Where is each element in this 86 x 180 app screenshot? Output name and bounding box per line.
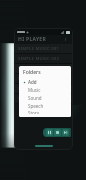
staticText: SIMPLE MUSIC 001 [18, 46, 60, 52]
staticText: SIMPLE MUSIC 003 [18, 66, 60, 72]
button[interactable]: Music [23, 86, 67, 94]
staticText: Story [28, 110, 39, 114]
staticText: Speech [28, 103, 44, 109]
button[interactable]: SIMPLE MUSIC 004 [15, 74, 72, 83]
button[interactable]: SIMPLE MUSIC 003 [15, 64, 72, 73]
staticText: Sound [28, 95, 42, 101]
button[interactable]: Speech [23, 102, 67, 110]
button[interactable]: SIMPLE MUSIC 001 [15, 44, 72, 53]
staticText: Add [28, 79, 37, 85]
staticText: SIMPLE MUSIC 004 [18, 76, 60, 82]
staticText: SIMPLE MUSIC 006 [18, 96, 60, 102]
button[interactable]: More options [62, 36, 69, 43]
staticText: SIMPLE MUSIC 002 [18, 56, 60, 62]
button[interactable]: Story [23, 110, 67, 114]
button[interactable]: Stop [54, 129, 61, 136]
button[interactable]: Next [62, 129, 69, 136]
button[interactable]: Pause [46, 129, 53, 136]
button[interactable]: Add [23, 78, 67, 86]
staticText: SIMPLE MUSIC 005 [18, 86, 60, 92]
button[interactable]: Sound [23, 94, 67, 102]
staticText: HI PLAYER [18, 36, 47, 43]
staticText: Folders [23, 69, 41, 76]
button[interactable]: SIMPLE MUSIC 002 [15, 54, 72, 63]
staticText: Music [28, 87, 41, 93]
button[interactable]: SIMPLE MUSIC 006 [15, 94, 72, 103]
button[interactable]: SIMPLE MUSIC 005 [15, 84, 72, 93]
